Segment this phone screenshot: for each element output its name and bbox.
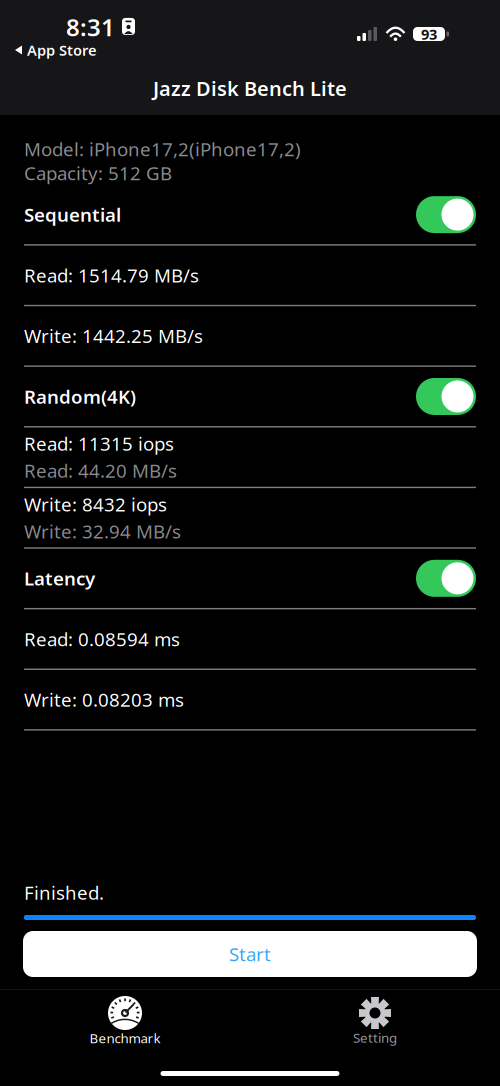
button[interactable]: Latency: [0, 549, 500, 608]
staticText: Jazz Disk Bench Lite: [153, 75, 347, 102]
staticText: Write: 8432 iops: [24, 492, 167, 517]
staticText: Read: 11315 iops: [24, 431, 174, 456]
staticText: Write: 1442.25 MB/s: [24, 323, 203, 348]
button[interactable]: Benchmark: [0, 990, 250, 1046]
staticText: Setting: [353, 1029, 397, 1046]
button[interactable]: Start: [23, 931, 477, 977]
staticText: 8:31: [66, 11, 115, 43]
staticText: Read: 0.08594 ms: [24, 627, 180, 651]
staticText: Read: 44.20 MB/s: [24, 458, 177, 483]
staticText: Benchmark: [89, 1029, 160, 1047]
staticText: Read: 1514.79 MB/s: [24, 263, 199, 288]
button[interactable]: Sequential: [0, 185, 500, 244]
staticText: Sequential: [24, 202, 121, 227]
staticText: Latency: [24, 566, 95, 591]
staticText: Start: [229, 942, 271, 966]
staticText: 93: [421, 24, 437, 44]
button[interactable]: App Store: [0, 41, 112, 59]
staticText: Capacity: 512 GB: [24, 161, 172, 185]
staticText: App Store: [27, 40, 97, 60]
staticText: Finished.: [24, 880, 104, 905]
staticText: Write: 0.08203 ms: [24, 687, 184, 712]
staticText: Random(4K): [24, 384, 136, 409]
staticText: Model: iPhone17,2(iPhone17,2): [24, 137, 301, 161]
button[interactable]: Random(4K): [0, 367, 500, 426]
staticText: Write: 32.94 MB/s: [24, 519, 181, 544]
button[interactable]: Setting: [250, 990, 500, 1045]
